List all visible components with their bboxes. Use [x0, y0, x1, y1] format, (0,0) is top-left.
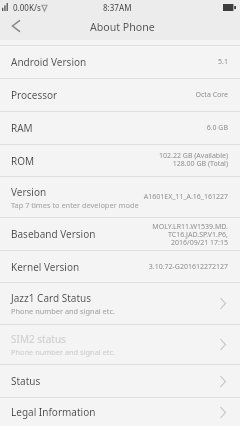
button[interactable]: Kernel Version	[0, 251, 240, 282]
staticText: 3.10.72-G201612272127	[148, 262, 228, 272]
button[interactable]: Jazz1 Card Status	[0, 283, 240, 324]
staticText: Baseband Version	[11, 227, 96, 241]
staticText: RAM	[11, 121, 33, 135]
staticText: 0.00K/s	[13, 2, 41, 13]
staticText: MOLY.LR11.W1539.MD. TC16.JAD.SP.V1.P6, 2…	[152, 222, 228, 247]
button[interactable]: SIM2 status	[0, 325, 240, 364]
staticText: Phone number and signal etc.	[11, 306, 115, 316]
button[interactable]: Status	[0, 365, 240, 397]
staticText: SIM2 status	[11, 332, 66, 346]
staticText: Phone number and signal etc.	[11, 347, 115, 357]
staticText: Tap 7 times to enter developer mode	[11, 200, 139, 210]
button[interactable]: RAM	[0, 112, 240, 144]
staticText: 6.0 GB	[206, 123, 228, 133]
staticText: About Phone	[90, 20, 155, 34]
button[interactable]: Android Version	[0, 46, 240, 78]
staticText: A1601EX_11_A.16_161227	[143, 192, 228, 202]
button[interactable]: Processor	[0, 79, 240, 111]
staticText: 8:37AM	[103, 2, 132, 13]
button[interactable]: Baseband Version	[0, 218, 240, 250]
staticText: Kernel Version	[11, 260, 80, 274]
staticText: ROM	[11, 154, 35, 168]
staticText: 5.1	[218, 57, 228, 67]
staticText: Octa Core	[195, 90, 228, 100]
staticText: Status	[11, 374, 41, 388]
staticText: Processor	[11, 88, 58, 102]
button[interactable]: Legal Information	[0, 398, 240, 426]
button[interactable]: Back	[0, 14, 31, 40]
staticText: 102.22 GB (Available) 128.00 GB (Total)	[159, 151, 228, 168]
button[interactable]: Version	[0, 177, 240, 217]
staticText: Legal Information	[11, 405, 96, 419]
button[interactable]: ROM	[0, 145, 240, 176]
staticText: Android Version	[11, 55, 87, 69]
staticText: Version	[11, 185, 47, 199]
staticText: Jazz1 Card Status	[11, 291, 91, 305]
